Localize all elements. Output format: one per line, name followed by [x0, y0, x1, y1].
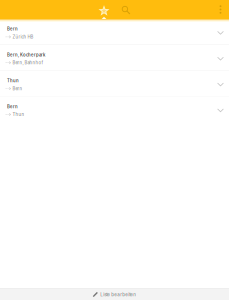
staticText: Zürich HB: [12, 34, 33, 39]
button[interactable]: Bern: [0, 19, 229, 45]
staticText: Bern, Bahnhof: [12, 60, 43, 65]
button[interactable]: Bern: [0, 97, 229, 122]
button[interactable]: Search: [115, 0, 137, 19]
staticText: Bern, Kocherpark: [7, 52, 45, 57]
button[interactable]: Bern, Kocherpark: [0, 45, 229, 71]
staticText: Thun: [7, 78, 19, 83]
staticText: Bern: [7, 104, 18, 109]
staticText: Bern: [7, 26, 18, 32]
staticText: Thun: [12, 112, 24, 117]
button[interactable]: Favourites: [93, 0, 115, 19]
staticText: Liste bearbeiten: [100, 292, 136, 297]
staticText: Bern: [12, 86, 22, 91]
button[interactable]: Thun: [0, 71, 229, 97]
button[interactable]: Liste bearbeiten: [0, 288, 229, 300]
button[interactable]: More options: [212, 0, 229, 19]
